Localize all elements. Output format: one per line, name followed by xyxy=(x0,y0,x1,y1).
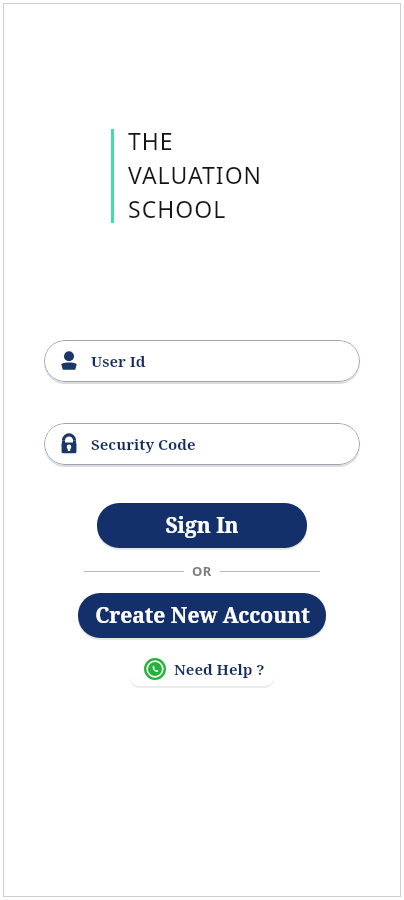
staticText: Need Help ? xyxy=(174,659,265,679)
staticText: Sign In xyxy=(165,511,239,540)
button[interactable]: Security code xyxy=(44,423,360,465)
other: Security code xyxy=(57,432,81,456)
staticText: Security Code xyxy=(91,434,196,454)
staticText: OR xyxy=(192,562,212,580)
button[interactable]: Create New Account xyxy=(78,593,326,638)
button[interactable]: Sign In xyxy=(97,503,307,548)
button[interactable]: User xyxy=(44,340,360,382)
staticText: SCHOOL xyxy=(128,193,227,219)
other: User xyxy=(57,349,81,373)
button[interactable]: Need help on WhatsApp xyxy=(130,652,274,686)
staticText: User Id xyxy=(91,351,146,371)
staticText: THE xyxy=(128,125,174,151)
staticText: Create New Account xyxy=(95,601,310,630)
other: Need help on WhatsApp xyxy=(144,658,166,680)
staticText: VALUATION xyxy=(128,159,263,185)
